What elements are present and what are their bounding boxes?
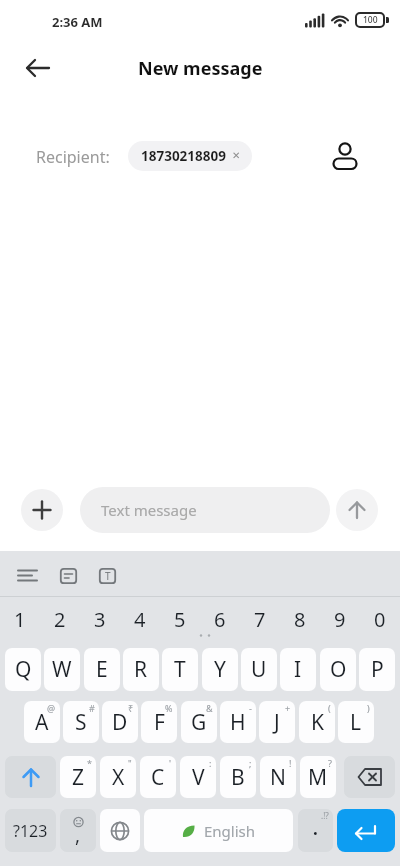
staticText: J bbox=[274, 708, 280, 737]
button[interactable] bbox=[21, 489, 63, 531]
button[interactable]: 7 bbox=[240, 601, 280, 637]
button[interactable]: R bbox=[123, 648, 159, 691]
staticText: 4 bbox=[134, 606, 146, 633]
staticText: M bbox=[308, 763, 328, 792]
staticText: Q bbox=[15, 655, 32, 684]
button[interactable]: English bbox=[144, 809, 293, 852]
staticText: ) bbox=[367, 702, 370, 714]
button[interactable]: E bbox=[84, 648, 120, 691]
button[interactable]: T bbox=[99, 568, 116, 584]
button[interactable]: Z bbox=[60, 756, 96, 798]
staticText: : bbox=[209, 757, 212, 769]
staticText: & bbox=[206, 702, 213, 714]
staticText: . bbox=[313, 817, 318, 840]
staticText: % bbox=[165, 702, 173, 714]
button[interactable]: O bbox=[320, 648, 356, 691]
staticText: - bbox=[249, 702, 252, 714]
staticText: 0 bbox=[374, 606, 386, 633]
button[interactable] bbox=[337, 809, 395, 852]
button[interactable]: S bbox=[63, 701, 99, 743]
staticText: X bbox=[112, 763, 125, 792]
staticText: ✕ bbox=[232, 150, 241, 162]
staticText: 9 bbox=[334, 606, 346, 633]
staticText: 8 bbox=[294, 606, 306, 633]
button[interactable]: W bbox=[44, 648, 80, 691]
staticText: N bbox=[270, 763, 286, 792]
button[interactable]: G bbox=[181, 701, 217, 743]
button[interactable]: I bbox=[280, 648, 316, 691]
staticText: G bbox=[191, 708, 207, 737]
staticText: D bbox=[112, 708, 128, 737]
button[interactable]: C bbox=[140, 756, 176, 798]
staticText: " bbox=[128, 757, 132, 769]
button[interactable] bbox=[100, 809, 140, 852]
staticText: 2 bbox=[54, 606, 66, 633]
staticText: ? bbox=[328, 757, 332, 769]
button[interactable]: , bbox=[60, 809, 96, 852]
button[interactable]: Y bbox=[202, 648, 238, 691]
staticText: Y bbox=[214, 655, 226, 684]
button[interactable]: X bbox=[100, 756, 136, 798]
button[interactable] bbox=[344, 756, 395, 798]
staticText: E bbox=[96, 655, 108, 684]
staticText: ; bbox=[249, 757, 252, 769]
staticText: # bbox=[89, 702, 95, 714]
staticText: S bbox=[75, 708, 87, 737]
staticText: T bbox=[174, 655, 186, 684]
staticText: + bbox=[285, 702, 291, 714]
staticText: O bbox=[330, 655, 347, 684]
button[interactable]: A bbox=[24, 701, 60, 743]
button[interactable]: J bbox=[259, 701, 295, 743]
button[interactable] bbox=[336, 489, 378, 531]
staticText: 100 bbox=[363, 14, 378, 26]
button[interactable]: 8 bbox=[280, 601, 320, 637]
staticText: 18730218809 bbox=[141, 147, 226, 165]
staticText: .!? bbox=[321, 810, 329, 821]
button[interactable]: N bbox=[260, 756, 296, 798]
staticText: B bbox=[231, 763, 245, 792]
button[interactable]: 9 bbox=[320, 601, 360, 637]
button[interactable]: P bbox=[359, 648, 395, 691]
button[interactable]: Text message bbox=[80, 487, 330, 533]
button[interactable]: ?123 bbox=[5, 809, 56, 852]
button[interactable]: Q bbox=[5, 648, 41, 691]
button[interactable]: K bbox=[299, 701, 335, 743]
staticText: Z bbox=[72, 763, 85, 792]
staticText: Recipient: bbox=[36, 146, 110, 168]
staticText: New message bbox=[138, 56, 263, 81]
button[interactable]: 5 bbox=[160, 601, 200, 637]
button[interactable]: 6 bbox=[200, 601, 240, 637]
button[interactable]: 3 bbox=[80, 601, 120, 637]
button[interactable]: 1 bbox=[0, 601, 40, 637]
button[interactable] bbox=[60, 568, 77, 584]
staticText: ?123 bbox=[13, 820, 48, 842]
button[interactable]: 18730218809 bbox=[128, 141, 252, 171]
staticText: 6 bbox=[214, 606, 226, 633]
staticText: V bbox=[192, 763, 205, 792]
button[interactable]: F bbox=[141, 701, 177, 743]
staticText: 5 bbox=[174, 606, 186, 633]
staticText: T bbox=[105, 569, 111, 583]
button[interactable] bbox=[16, 54, 60, 82]
button[interactable]: D bbox=[102, 701, 138, 743]
button[interactable]: U bbox=[241, 648, 277, 691]
button[interactable]: 4 bbox=[120, 601, 160, 637]
staticText: U bbox=[251, 655, 267, 684]
button[interactable]: 0 bbox=[360, 601, 400, 637]
staticText: W bbox=[52, 655, 72, 684]
button[interactable]: L bbox=[338, 701, 374, 743]
button[interactable]: 2 bbox=[40, 601, 80, 637]
button[interactable]: T bbox=[162, 648, 198, 691]
staticText: 2:36 AM bbox=[52, 13, 103, 31]
staticText: C bbox=[151, 763, 165, 792]
button[interactable] bbox=[5, 756, 56, 798]
staticText: P bbox=[371, 655, 384, 684]
staticText: 3 bbox=[94, 606, 106, 633]
button[interactable]: M bbox=[300, 756, 336, 798]
button[interactable] bbox=[327, 138, 363, 172]
button[interactable]: V bbox=[180, 756, 216, 798]
button[interactable]: H bbox=[220, 701, 256, 743]
staticText: 1 bbox=[14, 606, 26, 633]
button[interactable]: B bbox=[220, 756, 256, 798]
button[interactable]: .!? bbox=[298, 809, 333, 852]
